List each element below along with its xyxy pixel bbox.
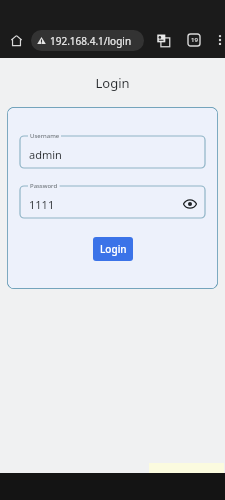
staticText: Login <box>0 74 225 92</box>
staticText: 192.168.4.1/login <box>50 34 132 48</box>
staticText: Password <box>30 182 58 190</box>
button[interactable]: More options <box>215 30 225 50</box>
button[interactable]: Home <box>5 29 27 51</box>
button[interactable]: Show password <box>181 195 199 213</box>
staticText: 1111 <box>29 197 55 212</box>
button[interactable]: 192.168.4.1/login <box>31 30 144 51</box>
button[interactable]: Tabs <box>184 30 204 50</box>
staticText: Login <box>100 242 127 256</box>
staticText: Username <box>30 132 60 140</box>
staticText: 19 <box>191 36 198 44</box>
staticText: КОТ <box>193 468 224 491</box>
button[interactable]: Login <box>93 237 133 261</box>
button[interactable]: Share <box>153 30 173 50</box>
staticText: admin <box>29 147 62 162</box>
